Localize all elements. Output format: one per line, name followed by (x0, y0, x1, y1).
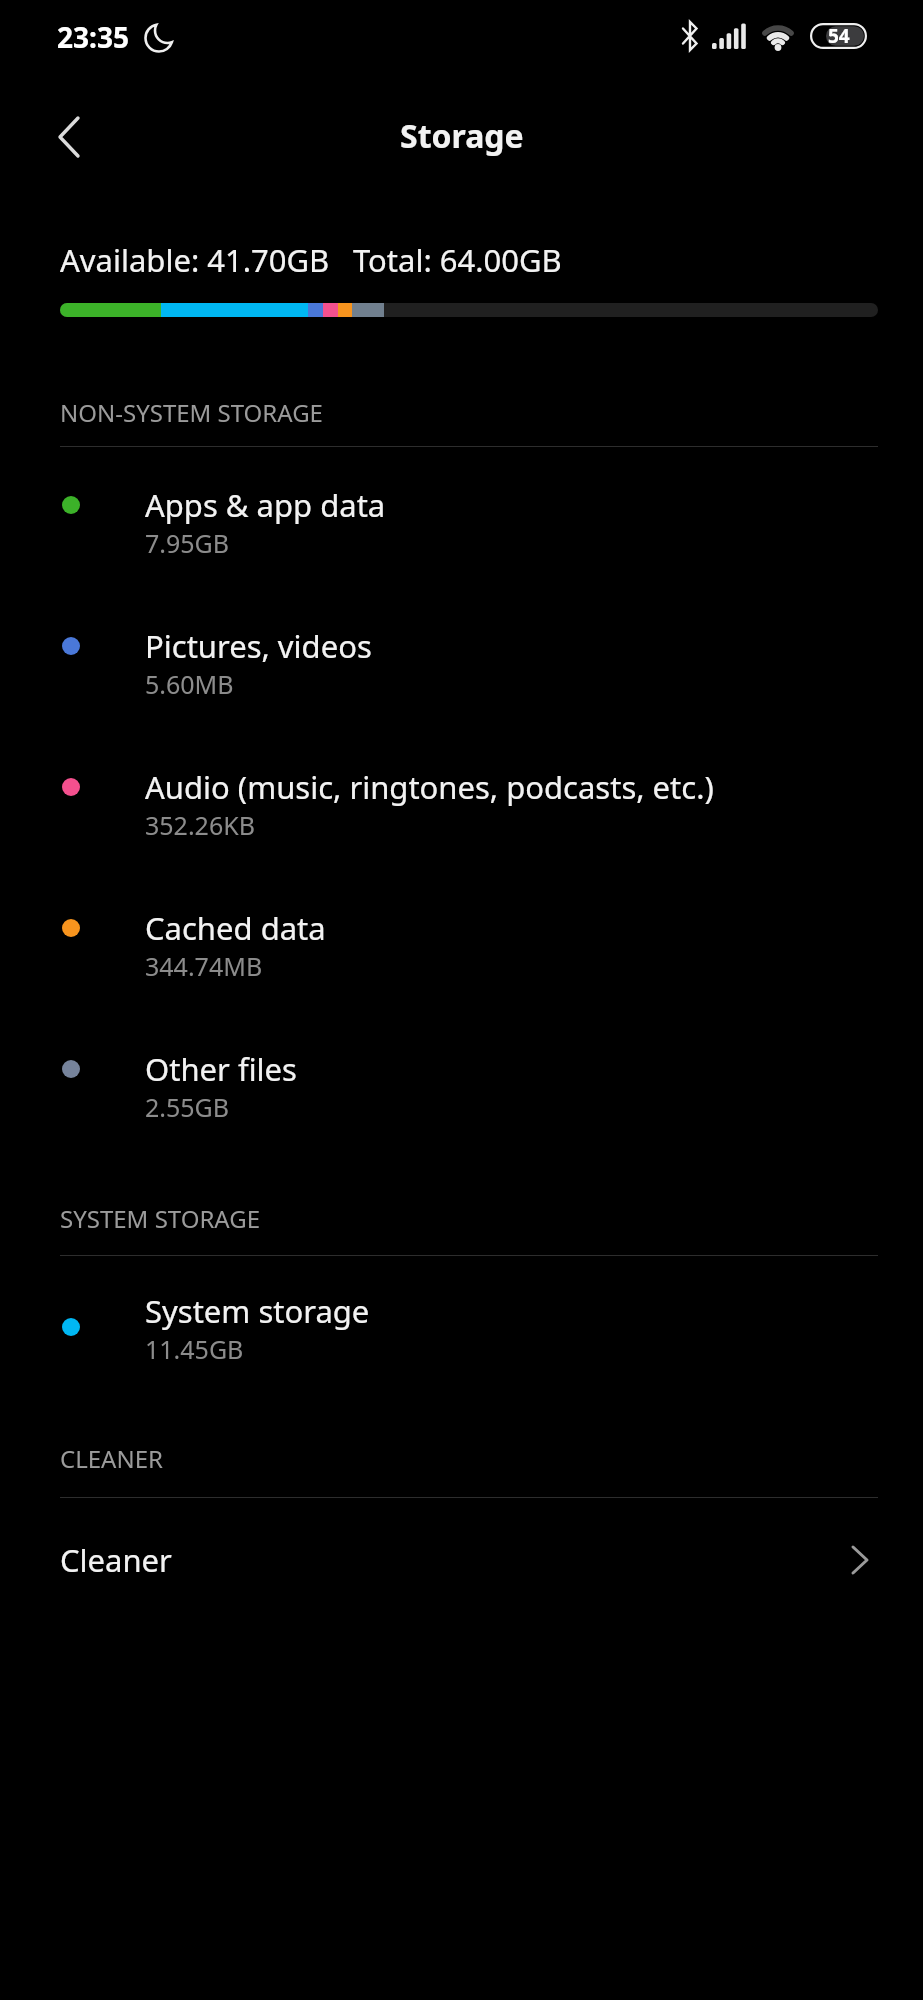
staticText: SYSTEM STORAGE (60, 1202, 261, 1235)
button[interactable]: Audio (music, ringtones, podcasts, etc.) (0, 729, 923, 855)
staticText: Apps & app data (145, 484, 386, 526)
staticText: 5.60MB (145, 667, 234, 701)
staticText: Available: 41.70GB (60, 239, 330, 281)
staticText: Cleaner (60, 1539, 172, 1581)
staticText: 54 (828, 23, 850, 49)
button[interactable]: Cached data (0, 870, 923, 996)
staticText: CLEANER (60, 1442, 163, 1475)
button[interactable]: Apps & app data (0, 447, 923, 573)
button[interactable]: Cleaner (0, 1510, 923, 1610)
staticText: NON-SYSTEM STORAGE (60, 396, 323, 429)
staticText: 7.95GB (145, 526, 230, 560)
staticText: 344.74MB (145, 949, 263, 983)
staticText: Audio (music, ringtones, podcasts, etc.) (145, 766, 714, 808)
button[interactable]: Other files (0, 1011, 923, 1137)
button[interactable] (40, 110, 100, 164)
staticText: 352.26KB (145, 808, 255, 842)
staticText: Total: 64.00GB (353, 239, 562, 281)
staticText: Cached data (145, 907, 326, 949)
button[interactable]: Pictures, videos (0, 588, 923, 714)
staticText: 2.55GB (145, 1090, 230, 1124)
staticText: Pictures, videos (145, 625, 372, 667)
staticText: Other files (145, 1048, 297, 1090)
staticText: 11.45GB (145, 1332, 244, 1366)
button[interactable]: System storage (0, 1253, 923, 1379)
staticText: Storage (400, 114, 524, 158)
staticText: System storage (145, 1290, 370, 1332)
staticText: 23:35 (57, 18, 129, 56)
